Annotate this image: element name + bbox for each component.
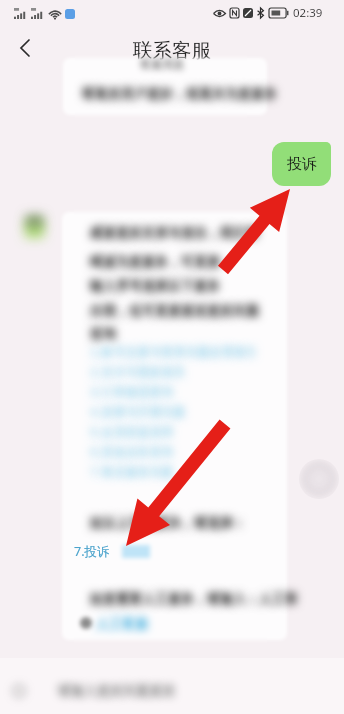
staticText: 投诉	[287, 155, 317, 174]
staticText: 7.投诉	[74, 543, 110, 560]
button[interactable]: 7.投诉	[74, 543, 110, 560]
button[interactable]: 7.售后服务问题	[74, 462, 264, 482]
button[interactable]: 1.账号注册与登录问题处理指引	[74, 342, 264, 362]
button[interactable]: 2.支付与退款相关	[74, 362, 264, 382]
button[interactable]: 6.其他业务咨询	[74, 442, 264, 462]
staticText: 联系客服	[133, 38, 211, 63]
button[interactable]: 3.订单物流查询	[74, 382, 264, 402]
staticText: 02:39	[293, 5, 323, 21]
button[interactable]: 4.发票与开票问题	[74, 402, 264, 422]
button[interactable]: Scroll to latest	[299, 459, 339, 499]
button[interactable]: Message input	[0, 658, 344, 714]
button[interactable]: Back	[6, 29, 44, 67]
button[interactable]: 投诉	[272, 142, 331, 186]
button[interactable]: 5.会员权益说明	[74, 422, 264, 442]
